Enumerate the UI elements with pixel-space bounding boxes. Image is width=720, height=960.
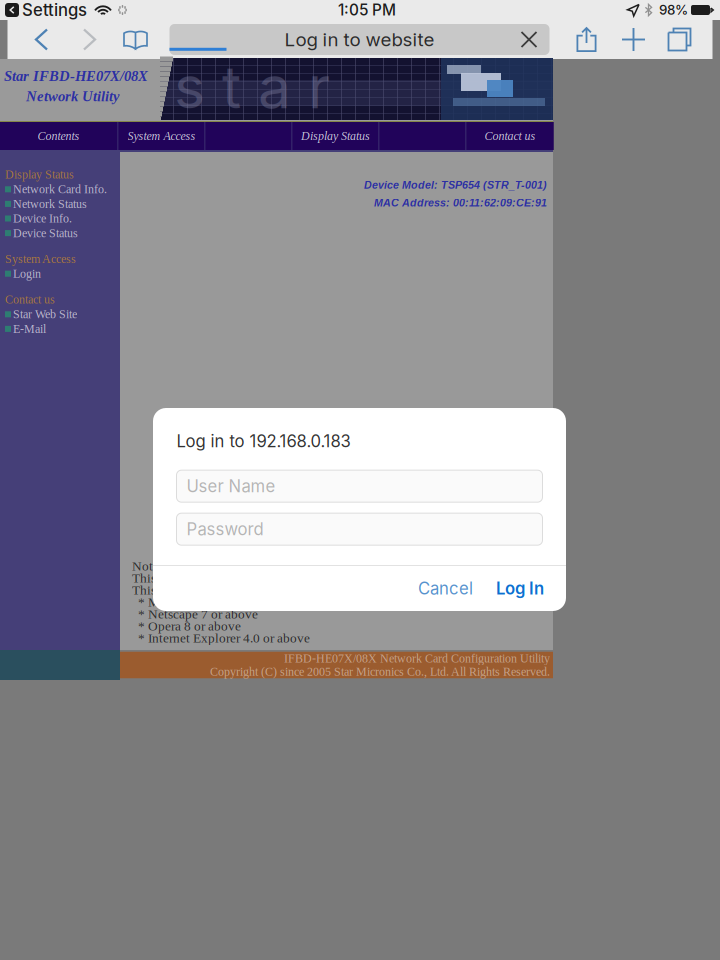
button[interactable]: User Name: [176, 470, 542, 502]
button[interactable]: Display Status: [292, 122, 378, 150]
button[interactable]: System Access: [118, 122, 204, 150]
staticText: 98%: [659, 2, 688, 18]
staticText: This web page supports the following bro…: [132, 583, 342, 597]
button[interactable]: Settings: [5, 0, 87, 20]
staticText: Network Utility: [26, 88, 120, 104]
staticText: s t a r: [174, 51, 330, 122]
staticText: Password: [186, 519, 263, 539]
button[interactable]: Contents: [0, 122, 117, 150]
staticText: Device Status: [13, 226, 78, 240]
button[interactable]: Bookmarks: [120, 24, 150, 54]
button[interactable]: Log in to website: [169, 24, 549, 55]
button[interactable]: Log In: [485, 567, 555, 610]
staticText: This web page is designed for 800 x 600 …: [132, 571, 342, 585]
staticText: Login: [13, 267, 41, 280]
staticText: System Access: [5, 252, 76, 266]
staticText: System Access: [127, 129, 195, 143]
button[interactable]: Password: [176, 513, 542, 545]
staticText: Copyright (C) since 2005 Star Micronics …: [210, 665, 550, 678]
staticText: Log in to website: [284, 28, 434, 51]
button[interactable]: Forward: [74, 24, 104, 54]
staticText: Star IFBD-HE07X/08X: [4, 68, 148, 84]
button[interactable]: Share: [570, 24, 602, 54]
staticText: * Netscape 7 or above: [132, 607, 258, 621]
button[interactable]: Contact us: [466, 122, 553, 150]
staticText: Display Status: [5, 168, 74, 181]
button[interactable]: Device Status: [0, 226, 119, 240]
button[interactable]: [205, 122, 291, 150]
staticText: Log in to 192.168.0.183: [176, 431, 350, 451]
button[interactable]: Network Status: [0, 197, 119, 211]
staticText: Star Web Site: [13, 308, 77, 321]
staticText: Cancel: [418, 578, 473, 599]
staticText: Network Status: [13, 197, 87, 211]
staticText: Device Model: TSP654 (STR_T-001): [364, 179, 547, 191]
button[interactable]: New Tab: [618, 24, 648, 54]
staticText: Notes: [132, 559, 164, 573]
button[interactable]: Cancel: [406, 567, 485, 610]
button[interactable]: Device Info.: [0, 211, 119, 226]
staticText: Contact us: [5, 293, 55, 306]
staticText: * Internet Explorer 4.0 or above: [132, 631, 310, 645]
button[interactable]: E-Mail: [0, 322, 119, 336]
staticText: * Mozilla 1.0 or above: [132, 595, 261, 609]
staticText: 1:05 PM: [338, 1, 396, 19]
button[interactable]: Back: [26, 24, 56, 54]
staticText: Contents: [37, 129, 79, 143]
staticText: User Name: [186, 476, 275, 496]
button[interactable]: [379, 122, 465, 150]
button[interactable]: Star Web Site: [0, 307, 119, 322]
staticText: Display Status: [301, 129, 370, 143]
button[interactable]: Network Card Info.: [0, 182, 119, 197]
staticText: MAC Address: 00:11:62:09:CE:91: [374, 197, 547, 209]
button[interactable]: Login: [0, 266, 119, 281]
staticText: Settings: [22, 0, 87, 20]
staticText: IFBD-HE07X/08X Network Card Configuratio…: [284, 652, 550, 665]
staticText: Device Info.: [13, 212, 72, 225]
staticText: Contact us: [484, 129, 535, 143]
staticText: Log In: [496, 578, 544, 599]
button[interactable]: Show Tabs: [664, 24, 694, 54]
staticText: * Opera 8 or above: [132, 619, 241, 633]
staticText: E-Mail: [13, 322, 46, 336]
staticText: Network Card Info.: [13, 183, 107, 196]
